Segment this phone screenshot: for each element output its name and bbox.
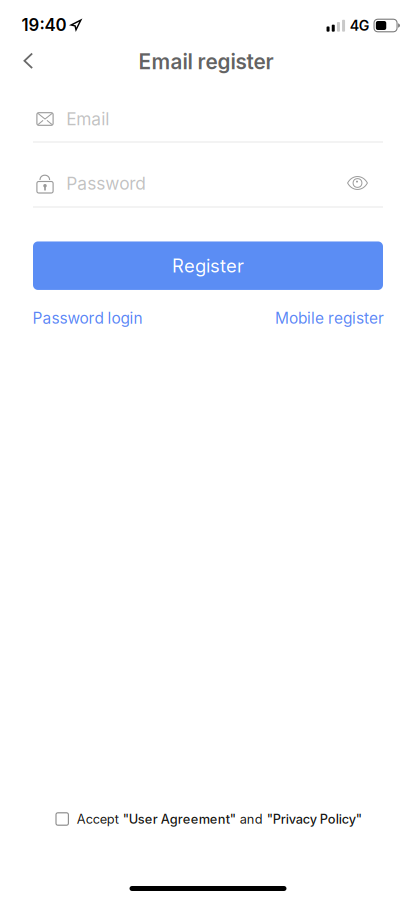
staticText: 19:40 — [21, 15, 66, 35]
button[interactable]: Email — [37, 97, 383, 141]
button[interactable]: Register — [33, 241, 383, 290]
button[interactable]: Accept agreement — [52, 809, 72, 829]
staticText: Accept "User Agreement" and "Privacy Pol… — [77, 811, 362, 826]
staticText: Mobile register — [275, 309, 384, 327]
button[interactable]: Back — [6, 39, 50, 83]
button[interactable]: Password — [37, 161, 337, 205]
staticText: Register — [172, 255, 244, 277]
button[interactable]: Password login — [32, 306, 142, 330]
staticText: Password login — [32, 309, 142, 327]
staticText: Password — [66, 173, 146, 194]
button[interactable]: Mobile register — [275, 306, 384, 330]
button[interactable]: Show password — [337, 163, 377, 203]
staticText: Email register — [138, 49, 273, 74]
staticText: Email — [66, 108, 109, 129]
staticText: 4G — [350, 17, 370, 34]
